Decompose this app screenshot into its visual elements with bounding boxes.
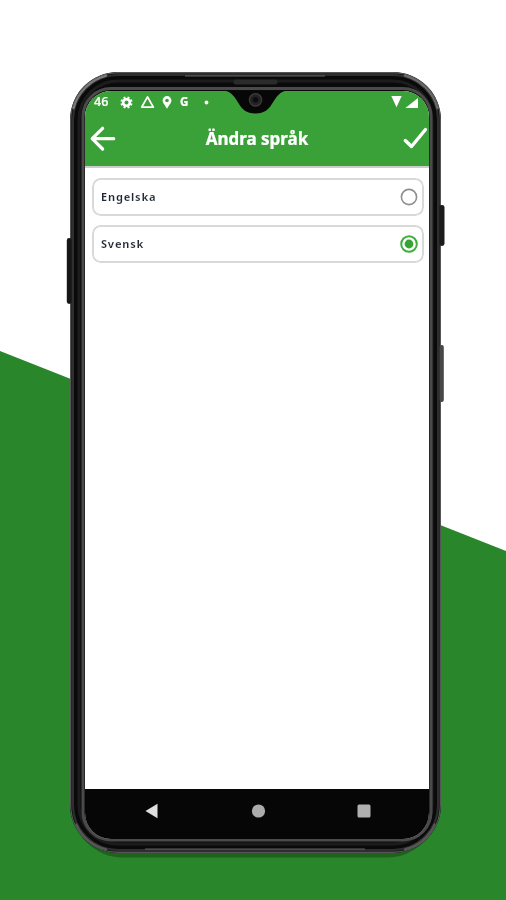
staticText: Engelska (101, 189, 157, 204)
button[interactable] (85, 119, 127, 166)
staticText: Ändra språk (85, 127, 429, 150)
button[interactable] (129, 792, 174, 836)
staticText: Svensk (101, 236, 145, 251)
button[interactable] (387, 119, 429, 166)
button[interactable]: Svensk (92, 225, 424, 263)
button[interactable] (342, 792, 387, 836)
staticText: G (180, 94, 189, 110)
button[interactable] (236, 792, 281, 836)
staticText: 46 (94, 93, 109, 110)
button[interactable]: Engelska (92, 178, 424, 216)
